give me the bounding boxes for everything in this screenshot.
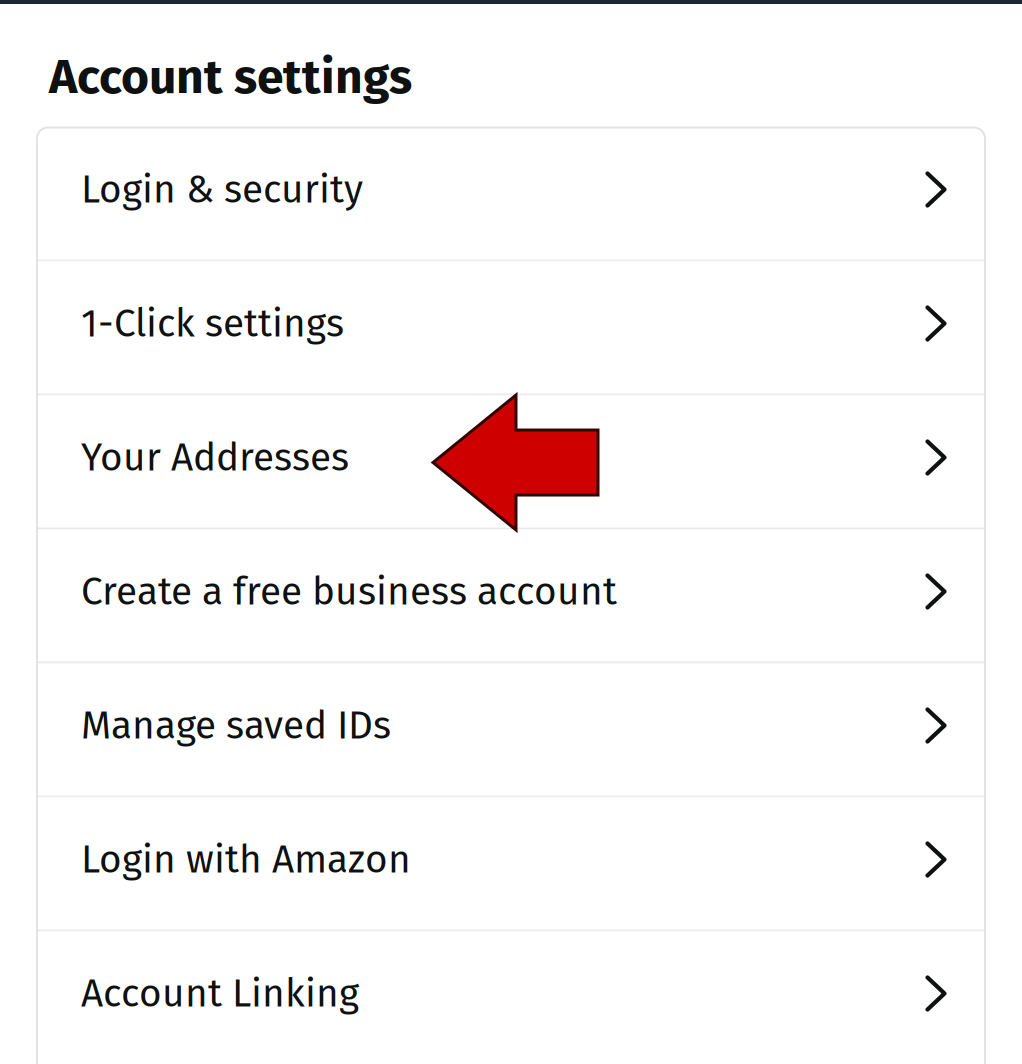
button[interactable]: 1-Click settings [37, 261, 985, 393]
staticText: Account Linking [81, 970, 359, 1017]
staticText: Login & security [81, 166, 363, 213]
staticText: Create a free business account [81, 568, 617, 615]
staticText: 1-Click settings [81, 300, 344, 347]
staticText: Manage saved IDs [81, 702, 391, 749]
button[interactable]: Login & security [37, 127, 985, 259]
staticText: Login with Amazon [81, 836, 411, 883]
button[interactable]: Manage saved IDs [37, 663, 985, 795]
button[interactable]: Login with Amazon [37, 797, 985, 929]
button[interactable]: Your Addresses [37, 395, 985, 527]
staticText: Your Addresses [81, 434, 349, 481]
staticText: Account settings [49, 48, 412, 106]
button[interactable]: Create a free business account [37, 529, 985, 661]
button[interactable]: Account Linking [37, 931, 985, 1063]
